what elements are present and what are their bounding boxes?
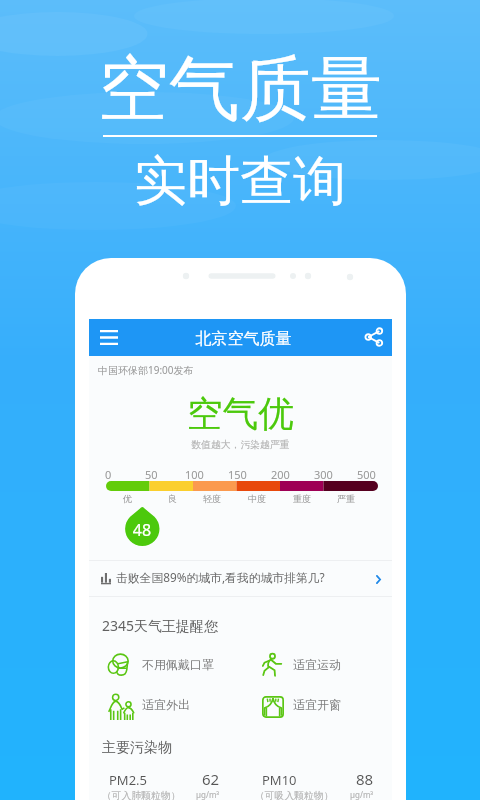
- button[interactable]: 击败全国89%的城市,看我的城市排第几?: [89, 561, 392, 596]
- staticText: 数值越大，污染越严重: [89, 439, 392, 451]
- staticText: 北京空气质量: [130, 329, 357, 349]
- staticText: 适宜开窗: [293, 697, 341, 712]
- staticText: 500: [357, 467, 376, 482]
- staticText: 空气优: [89, 392, 392, 437]
- staticText: 空气质量: [0, 45, 480, 134]
- staticText: µg/m³: [196, 789, 220, 800]
- staticText: 150: [228, 467, 247, 482]
- staticText: 300: [314, 467, 333, 482]
- staticText: （可入肺颗粒物）: [102, 790, 181, 800]
- button[interactable]: 适宜外出: [89, 693, 240, 721]
- staticText: 主要污染物: [102, 739, 172, 757]
- staticText: 不用佩戴口罩: [142, 657, 214, 672]
- button[interactable]: Share: [355, 318, 392, 355]
- staticText: 严重: [337, 493, 355, 504]
- staticText: 50: [145, 467, 158, 482]
- staticText: 88: [356, 769, 374, 789]
- staticText: PM2.5: [109, 771, 148, 789]
- staticText: 良: [168, 493, 177, 504]
- staticText: 轻度: [203, 493, 221, 504]
- staticText: 0: [105, 467, 112, 482]
- staticText: 适宜外出: [142, 697, 190, 712]
- staticText: 击败全国89%的城市,看我的城市排第几?: [116, 569, 325, 585]
- staticText: 中度: [248, 493, 266, 504]
- staticText: µg/m³: [350, 789, 374, 800]
- staticText: 优: [123, 493, 132, 504]
- staticText: 实时查询: [0, 148, 480, 215]
- button[interactable]: 不用佩戴口罩: [89, 653, 240, 681]
- staticText: 48: [131, 519, 153, 541]
- staticText: 中国环保部19:00发布: [98, 363, 194, 377]
- staticText: 重度: [293, 493, 311, 504]
- staticText: 62: [202, 769, 220, 789]
- staticText: （可吸入颗粒物）: [255, 790, 334, 800]
- staticText: 适宜运动: [293, 657, 341, 672]
- staticText: 200: [271, 467, 290, 482]
- button[interactable]: 适宜开窗: [240, 693, 392, 721]
- staticText: 2345天气王提醒您: [102, 616, 219, 635]
- button[interactable]: Menu: [89, 319, 128, 356]
- staticText: PM10: [262, 771, 297, 789]
- button[interactable]: 适宜运动: [240, 653, 392, 681]
- staticText: 100: [185, 467, 204, 482]
